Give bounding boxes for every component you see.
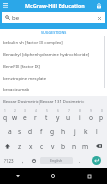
staticText: k <box>84 127 88 136</box>
button[interactable]: d <box>25 124 36 139</box>
staticText: , <box>22 157 24 164</box>
button[interactable]: z <box>15 139 25 153</box>
staticText: j <box>74 127 76 136</box>
staticText: w <box>12 113 18 122</box>
button[interactable]: b <box>58 139 69 153</box>
staticText: Benadryl [diphenhydramine hydrochloride] <box>3 51 90 57</box>
staticText: a <box>8 127 12 136</box>
staticText: g <box>50 127 55 136</box>
staticText: English <box>50 158 63 163</box>
staticText: 8 <box>79 109 81 113</box>
staticText: bebulin vh [factor IX complex] <box>3 39 63 45</box>
staticText: l <box>96 127 98 136</box>
button[interactable]: 2 <box>10 108 20 124</box>
button[interactable]: Lock <box>93 0 104 11</box>
staticText: r <box>34 113 37 122</box>
button[interactable]: f <box>36 124 47 139</box>
button[interactable]: Emoji <box>28 153 40 168</box>
staticText: n <box>72 142 77 151</box>
button[interactable]: Back <box>0 168 35 184</box>
button[interactable]: Bexxar 131 Dosimetric <box>40 96 85 108</box>
button[interactable]: Shift <box>0 139 15 153</box>
button[interactable]: Bexxar Dosimetric <box>3 96 39 108</box>
button[interactable]: BeneFIX [factor IX] <box>0 60 107 72</box>
button[interactable]: j <box>69 124 80 139</box>
button[interactable]: 5 <box>41 108 52 124</box>
button[interactable]: h <box>58 124 69 139</box>
button[interactable]: Comma <box>18 153 28 168</box>
button[interactable]: m <box>80 139 91 153</box>
button[interactable]: a <box>5 124 15 139</box>
staticText: be <box>12 14 20 22</box>
button[interactable]: ?123 <box>0 153 18 168</box>
button[interactable]: s <box>15 124 25 139</box>
button[interactable]: k <box>80 124 91 139</box>
staticText: i <box>79 113 81 122</box>
button[interactable]: 4 <box>30 108 41 124</box>
staticText: e <box>23 113 27 122</box>
staticText: 4 <box>35 109 37 113</box>
staticText: Bexxar Dosimetric <box>3 99 39 105</box>
staticText: SUGGESTIONS <box>41 30 67 35</box>
button[interactable]: 1 <box>0 108 10 124</box>
staticText: BeneFIX [factor IX] <box>3 63 41 69</box>
button[interactable]: Period <box>73 153 86 168</box>
staticText: v <box>51 142 55 151</box>
staticText: h <box>61 127 66 136</box>
staticText: 3 <box>24 109 26 113</box>
staticText: 6 <box>57 109 59 113</box>
button[interactable]: l <box>91 124 102 139</box>
staticText: McGraw-Hill Education <box>25 2 85 9</box>
staticText: b <box>61 142 66 151</box>
button[interactable]: Benadryl [diphenhydramine hydrochloride] <box>0 48 107 60</box>
button[interactable]: x <box>25 139 36 153</box>
staticText: 0 <box>101 109 103 113</box>
staticText: x <box>29 142 33 151</box>
staticText: 7 <box>68 109 70 113</box>
staticText: ?123 <box>4 158 14 164</box>
button[interactable]: Backspace <box>91 139 107 153</box>
button[interactable]: Navigation menu <box>0 0 11 11</box>
button[interactable]: c <box>36 139 47 153</box>
staticText: f <box>40 127 43 136</box>
staticText: 2 <box>14 109 16 113</box>
button[interactable]: bevacizumab <box>0 84 107 94</box>
button[interactable]: benztropine mesylate <box>0 72 107 84</box>
button[interactable]: 3 <box>20 108 30 124</box>
staticText: 5 <box>46 109 48 113</box>
staticText: y <box>56 113 60 122</box>
staticText: p <box>99 113 104 122</box>
button[interactable]: Recent apps <box>71 168 107 184</box>
button[interactable]: v <box>47 139 58 153</box>
staticText: m <box>82 142 89 151</box>
button[interactable]: bebulin vh [factor IX complex] <box>0 36 107 48</box>
staticText: d <box>28 127 33 136</box>
button[interactable]: English <box>40 157 73 164</box>
staticText: c <box>40 142 44 151</box>
staticText: 9 <box>90 109 92 113</box>
button[interactable]: 7 <box>63 108 74 124</box>
staticText: o <box>89 113 93 122</box>
button[interactable]: 0 <box>96 108 107 124</box>
button[interactable]: Home <box>35 168 71 184</box>
staticText: Bexxar 131 Dosimetric <box>40 99 85 105</box>
button[interactable]: 8 <box>74 108 85 124</box>
staticText: q <box>3 113 8 122</box>
button[interactable]: n <box>69 139 80 153</box>
button[interactable]: 6 <box>52 108 63 124</box>
staticText: s <box>18 127 22 136</box>
staticText: 1 <box>4 109 6 113</box>
button[interactable]: 9 <box>85 108 96 124</box>
staticText: u <box>66 113 71 122</box>
button[interactable]: Clear search <box>95 14 103 22</box>
button[interactable]: Enter <box>86 153 107 168</box>
staticText: benztropine mesylate <box>3 75 47 81</box>
button[interactable]: g <box>47 124 58 139</box>
staticText: t <box>45 113 48 122</box>
staticText: z <box>18 142 22 151</box>
staticText: bevacizumab <box>3 86 30 92</box>
staticText: . <box>79 157 81 164</box>
